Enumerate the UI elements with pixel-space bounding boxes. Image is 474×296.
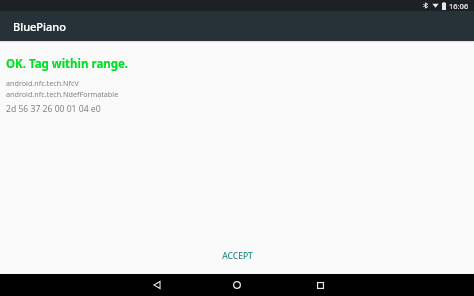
staticText: OK. Tag within range. (6, 56, 129, 72)
staticText: 2d 56 37 26 00 01 04 e0 (6, 103, 101, 115)
staticText: 16:06 (449, 1, 469, 11)
staticText: ACCEPT (222, 250, 253, 262)
staticText: android.nfc.tech.NdefFormatable (6, 89, 119, 99)
button[interactable]: Back (140, 274, 174, 296)
staticText: BluePiano (13, 19, 66, 34)
button[interactable]: Recent apps (303, 274, 337, 296)
staticText: android.nfc.tech.NfcV (6, 78, 79, 88)
button[interactable]: ACCEPT (206, 245, 269, 267)
button[interactable]: Home (220, 274, 254, 296)
